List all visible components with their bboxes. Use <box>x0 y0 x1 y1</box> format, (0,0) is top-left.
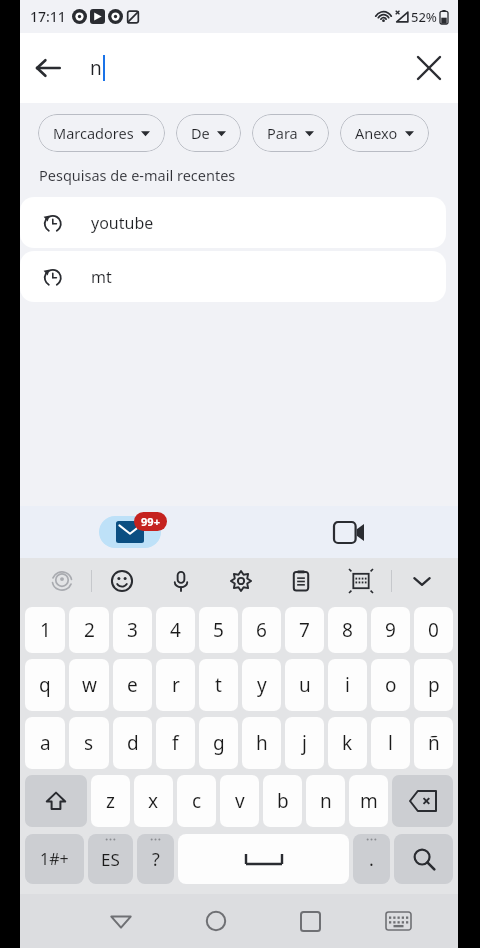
staticText: 2 <box>84 617 95 643</box>
staticText: 1 <box>40 617 51 643</box>
button[interactable]: . <box>353 834 390 884</box>
button[interactable]: j <box>285 717 324 769</box>
button[interactable]: r <box>156 659 195 711</box>
button[interactable]: h <box>242 717 281 769</box>
staticText: m <box>360 788 378 814</box>
button[interactable]: w <box>69 659 109 711</box>
button[interactable]: Back <box>20 40 76 96</box>
button[interactable]: ñ <box>414 717 453 769</box>
staticText: 8 <box>342 617 353 643</box>
staticText: p <box>428 672 440 698</box>
staticText: a <box>40 730 51 756</box>
button[interactable]: 0 <box>414 607 453 653</box>
button[interactable]: 4 <box>156 607 195 653</box>
button[interactable]: Switch keyboard <box>358 894 439 948</box>
button[interactable]: Collapse <box>392 558 452 604</box>
button[interactable]: Marcadores <box>38 114 165 152</box>
button[interactable]: Translate <box>32 558 91 604</box>
staticText: v <box>235 788 245 814</box>
button[interactable]: f <box>156 717 195 769</box>
staticText: 5 <box>213 617 224 643</box>
staticText: b <box>277 788 289 814</box>
staticText: Marcadores <box>53 123 134 143</box>
button[interactable]: x <box>134 775 173 827</box>
button[interactable]: Settings <box>211 558 271 604</box>
staticText: t <box>215 672 222 698</box>
staticText: Anexo <box>355 123 398 143</box>
button[interactable]: 8 <box>328 607 367 653</box>
button[interactable]: Clear <box>400 39 458 97</box>
button[interactable]: 1 <box>25 607 65 653</box>
button[interactable]: z <box>91 775 130 827</box>
button[interactable]: Home <box>168 894 263 948</box>
button[interactable]: o <box>371 659 410 711</box>
button[interactable]: Mail <box>20 506 239 558</box>
staticText: 3 <box>127 617 138 643</box>
staticText: . <box>369 847 374 872</box>
button[interactable]: b <box>263 775 302 827</box>
button[interactable]: d <box>113 717 152 769</box>
staticText: 7 <box>299 617 310 643</box>
button[interactable]: Search <box>394 834 453 884</box>
button[interactable]: t <box>199 659 238 711</box>
staticText: o <box>385 672 397 698</box>
button[interactable]: m <box>349 775 388 827</box>
button[interactable]: Clipboard <box>271 558 331 604</box>
button[interactable]: Anexo <box>340 114 429 152</box>
button[interactable]: n <box>306 775 345 827</box>
button[interactable]: Back <box>73 894 168 948</box>
button[interactable]: Resize keyboard <box>331 558 391 604</box>
button[interactable]: q <box>25 659 65 711</box>
button[interactable]: 6 <box>242 607 281 653</box>
button[interactable]: 2 <box>69 607 109 653</box>
staticText: u <box>299 672 311 698</box>
staticText: h <box>256 730 268 756</box>
button[interactable]: De <box>176 114 241 152</box>
staticText: r <box>172 672 180 698</box>
button[interactable]: 1#+ <box>25 834 84 884</box>
button[interactable]: Shift <box>25 775 87 827</box>
staticText: d <box>127 730 139 756</box>
button[interactable]: 3 <box>113 607 152 653</box>
staticText: e <box>127 672 138 698</box>
staticText: w <box>82 672 97 698</box>
staticText: 52% <box>411 8 437 26</box>
button[interactable]: Meet <box>239 506 458 558</box>
button[interactable]: c <box>177 775 216 827</box>
staticText: ? <box>152 847 160 872</box>
button[interactable]: l <box>371 717 410 769</box>
button[interactable]: Para <box>252 114 329 152</box>
button[interactable]: Recents <box>263 894 358 948</box>
button[interactable]: Space <box>178 834 349 884</box>
button[interactable]: v <box>220 775 259 827</box>
button[interactable]: s <box>69 717 109 769</box>
button[interactable]: 7 <box>285 607 324 653</box>
button[interactable]: mt <box>20 251 446 302</box>
staticText: 9 <box>385 617 396 643</box>
button[interactable]: 5 <box>199 607 238 653</box>
button[interactable]: e <box>113 659 152 711</box>
button[interactable]: y <box>242 659 281 711</box>
button[interactable]: a <box>25 717 65 769</box>
staticText: g <box>213 730 225 756</box>
button[interactable]: Backspace <box>392 775 453 827</box>
button[interactable]: youtube <box>20 197 446 248</box>
staticText: Pesquisas de e-mail recentes <box>39 165 236 185</box>
staticText: 99+ <box>141 514 160 529</box>
button[interactable]: i <box>328 659 367 711</box>
button[interactable]: ES <box>88 834 133 884</box>
button[interactable]: Emoji <box>92 558 151 604</box>
staticText: mt <box>91 266 112 288</box>
button[interactable]: p <box>414 659 453 711</box>
staticText: 4 <box>170 617 181 643</box>
button[interactable]: u <box>285 659 324 711</box>
button[interactable]: ? <box>137 834 174 884</box>
staticText: y <box>257 672 267 698</box>
button[interactable]: Voice input <box>151 558 211 604</box>
staticText: z <box>106 788 115 814</box>
button[interactable]: g <box>199 717 238 769</box>
staticText: j <box>302 730 307 756</box>
button[interactable]: 9 <box>371 607 410 653</box>
button[interactable]: k <box>328 717 367 769</box>
staticText: De <box>191 123 210 143</box>
